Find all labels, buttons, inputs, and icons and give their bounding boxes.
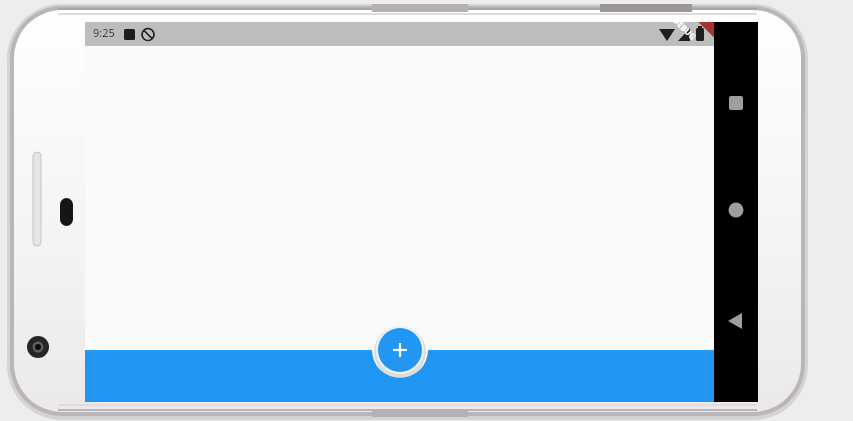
staticText: 9:25 bbox=[93, 25, 115, 40]
button[interactable]: Add bbox=[378, 328, 422, 372]
button[interactable]: Back bbox=[714, 304, 758, 338]
button[interactable]: Home bbox=[714, 193, 758, 227]
button[interactable]: Recents bbox=[714, 86, 758, 120]
button[interactable] bbox=[85, 350, 714, 402]
staticText: DEBUG bbox=[671, 14, 699, 42]
